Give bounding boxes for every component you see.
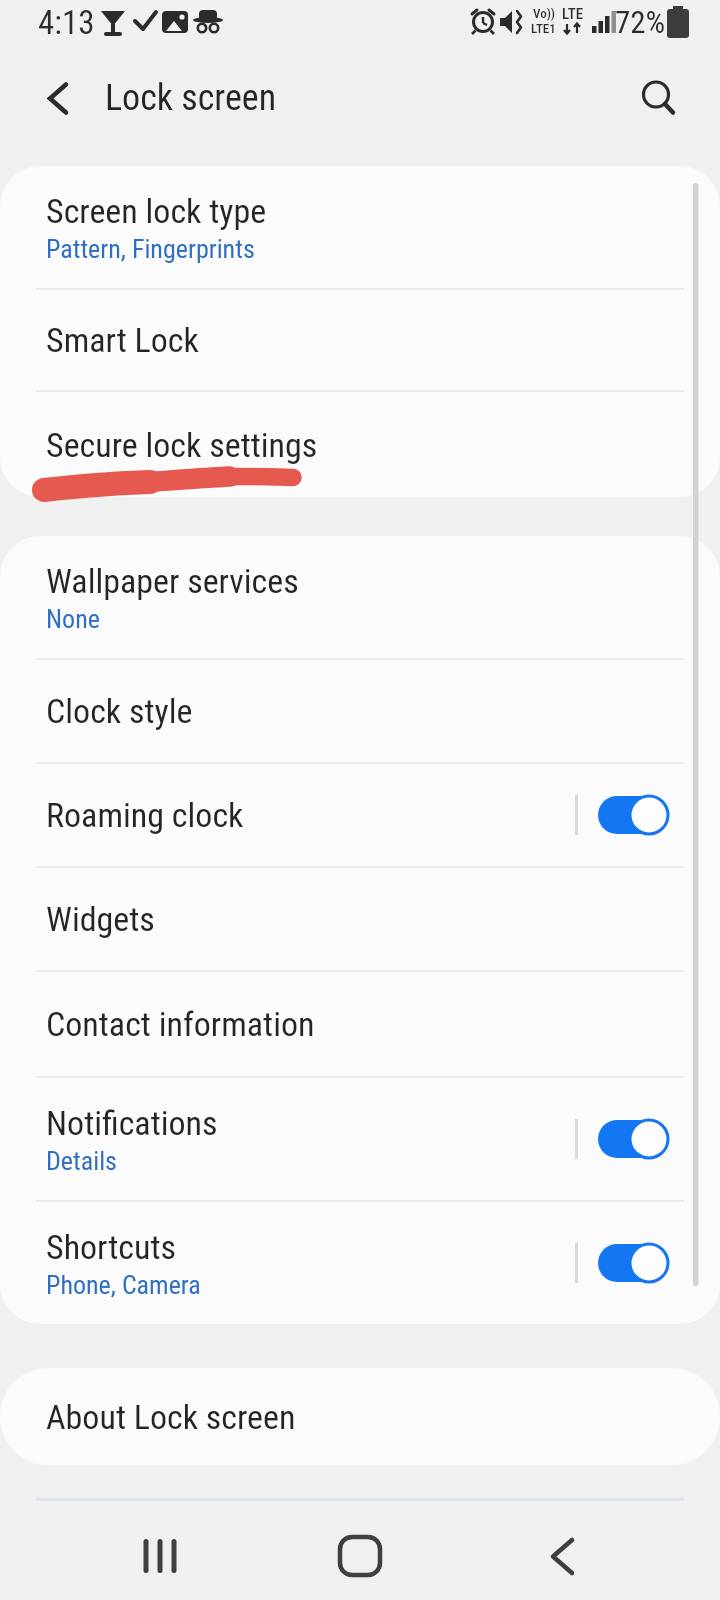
button[interactable]: Contact information	[0, 972, 720, 1076]
button[interactable]: About Lock screen	[0, 1368, 720, 1465]
staticText: Phone, Camera	[46, 1270, 201, 1300]
button[interactable]	[598, 1241, 670, 1285]
staticText: Screen lock type	[46, 191, 267, 231]
staticText: Contact information	[46, 1004, 315, 1044]
button[interactable]: Roaming clock	[0, 764, 720, 866]
button[interactable]	[310, 1516, 410, 1592]
staticText: Clock style	[46, 691, 193, 731]
staticText: Wallpaper services	[46, 561, 299, 601]
button[interactable]	[28, 70, 84, 126]
staticText: Roaming clock	[46, 795, 244, 835]
staticText: Lock screen	[105, 77, 277, 119]
button[interactable]: Notifications	[0, 1078, 720, 1200]
button[interactable]	[598, 793, 670, 837]
button[interactable]: Secure lock settings	[0, 392, 720, 497]
staticText: 72%	[615, 4, 666, 40]
staticText: Secure lock settings	[46, 425, 318, 465]
button[interactable]: Screen lock type	[0, 166, 720, 288]
button[interactable]: Widgets	[0, 868, 720, 970]
staticText: About Lock screen	[46, 1397, 296, 1437]
staticText: Widgets	[46, 899, 155, 939]
staticText: LTE	[562, 5, 584, 23]
button[interactable]: Clock style	[0, 660, 720, 762]
button[interactable]: Wallpaper services	[0, 536, 720, 658]
button[interactable]	[598, 1117, 670, 1161]
staticText: None	[46, 604, 100, 634]
button[interactable]	[636, 70, 692, 126]
button[interactable]	[512, 1516, 612, 1592]
staticText: 4:13	[38, 3, 95, 42]
staticText: Vo))	[533, 6, 556, 21]
staticText: Shortcuts	[46, 1227, 177, 1267]
staticText: Smart Lock	[46, 320, 199, 360]
staticText: Details	[46, 1146, 117, 1176]
button[interactable]: Smart Lock	[0, 290, 720, 390]
button[interactable]: Shortcuts	[0, 1202, 720, 1324]
staticText: Notifications	[46, 1103, 218, 1143]
button[interactable]	[110, 1516, 210, 1592]
staticText: LTE1	[531, 21, 556, 36]
staticText: Pattern, Fingerprints	[46, 234, 255, 264]
